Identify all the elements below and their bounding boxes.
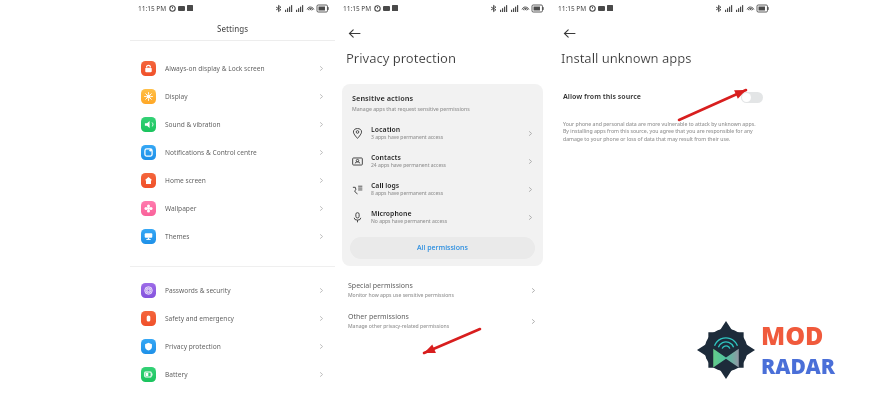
staticText: Passwords & security: [165, 286, 318, 295]
staticText: Privacy protection: [165, 342, 318, 351]
staticText: Allow from this source: [563, 92, 741, 102]
staticText: 11:15 PM: [138, 4, 167, 13]
button[interactable]: Themes: [130, 222, 335, 250]
button[interactable]: Display: [130, 82, 335, 110]
staticText: Location: [371, 125, 401, 134]
staticText: Display: [165, 92, 318, 101]
staticText: Sensitive actions: [352, 93, 414, 103]
button[interactable]: Sound & vibration: [130, 110, 335, 138]
staticText: RADAR: [761, 352, 835, 381]
staticText: 3 apps have permanent access: [371, 134, 444, 141]
staticText: Contacts: [371, 153, 401, 162]
button[interactable]: Safety and emergency: [130, 304, 335, 332]
staticText: Battery: [165, 370, 318, 379]
staticText: 11:15 PM: [343, 4, 372, 13]
staticText: Manage other privacy-related permissions: [348, 323, 450, 330]
staticText: MOD: [761, 318, 824, 352]
button[interactable]: Other permissions: [335, 310, 550, 332]
button[interactable]: Wallpaper: [130, 194, 335, 222]
other: Allow from this source toggle: [741, 92, 763, 103]
staticText: Other permissions: [348, 312, 409, 322]
staticText: Privacy protection: [346, 49, 456, 67]
staticText: Safety and emergency: [165, 314, 318, 323]
staticText: All permissions: [417, 243, 468, 253]
button[interactable]: Always-on display & Lock screen: [130, 54, 335, 82]
button[interactable]: Notifications & Control centre: [130, 138, 335, 166]
button[interactable]: Allow from this source: [550, 86, 775, 108]
staticText: 11:15 PM: [558, 4, 587, 13]
button[interactable]: Call logs: [342, 175, 543, 203]
button[interactable]: Microphone: [342, 203, 543, 231]
staticText: No apps have permanent access: [371, 218, 448, 225]
button[interactable]: Home screen: [130, 166, 335, 194]
button[interactable]: Privacy protection: [130, 332, 335, 360]
staticText: 24 apps have permanent access: [371, 162, 446, 169]
staticText: Home screen: [165, 176, 318, 185]
staticText: Themes: [165, 232, 318, 241]
staticText: Notifications & Control centre: [165, 148, 318, 157]
staticText: Install unknown apps: [561, 49, 692, 67]
button[interactable]: Passwords & security: [130, 276, 335, 304]
staticText: Always-on display & Lock screen: [165, 64, 318, 73]
button[interactable]: Back: [344, 23, 364, 43]
button[interactable]: Contacts: [342, 147, 543, 175]
button[interactable]: Location: [342, 119, 543, 147]
staticText: Monitor how apps use sensitive permissio…: [348, 292, 454, 299]
staticText: Microphone: [371, 209, 412, 218]
button[interactable]: Back: [559, 23, 579, 43]
button[interactable]: All permissions: [350, 237, 535, 259]
staticText: Settings: [217, 23, 249, 34]
staticText: 8 apps have permanent access: [371, 190, 444, 197]
staticText: Your phone and personal data are more vu…: [563, 120, 762, 143]
staticText: Call logs: [371, 181, 400, 190]
button[interactable]: Special permissions: [335, 279, 550, 301]
staticText: Special permissions: [348, 281, 413, 291]
button[interactable]: Battery: [130, 360, 335, 388]
staticText: Wallpaper: [165, 204, 318, 213]
staticText: Sound & vibration: [165, 120, 318, 129]
staticText: Manage apps that request sensitive permi…: [352, 105, 470, 112]
